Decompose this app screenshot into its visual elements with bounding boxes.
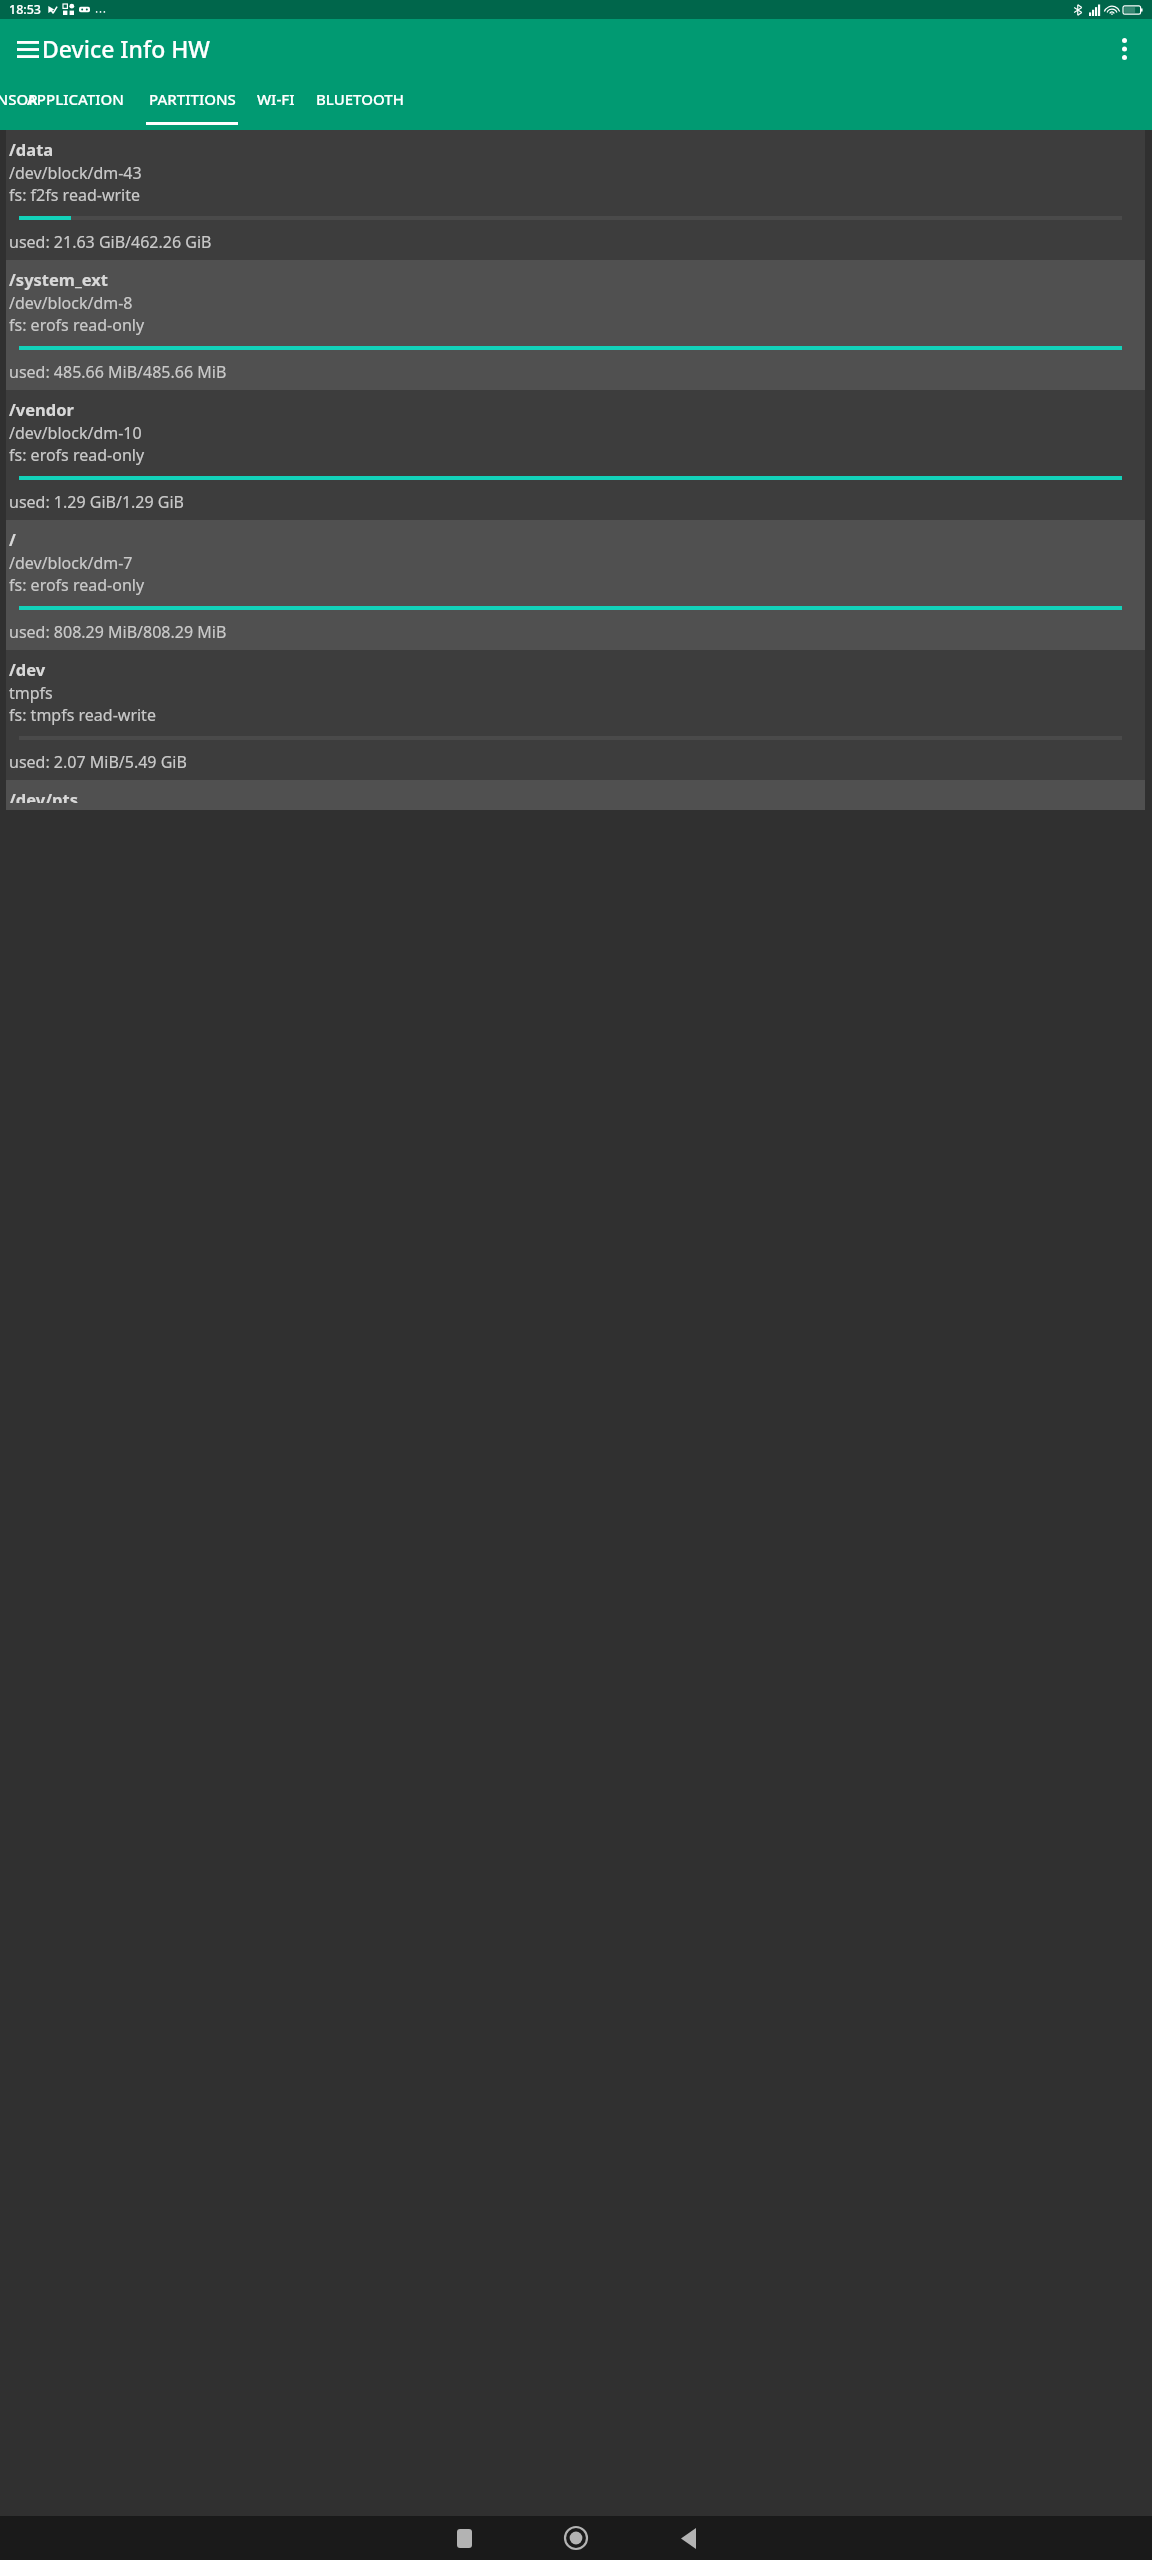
button[interactable]: Recent apps: [425, 2516, 503, 2560]
staticText: 18:53: [9, 1, 42, 18]
staticText: /data: [9, 138, 54, 160]
button[interactable]: Back: [649, 2516, 727, 2560]
staticText: used: 808.29 MiB/808.29 MiB: [9, 621, 227, 643]
staticText: /dev/block/dm-43: [9, 162, 142, 184]
button[interactable]: SENSORS: [0, 74, 42, 123]
staticText: WI-FI: [257, 89, 295, 109]
staticText: SENSORS: [0, 89, 42, 109]
button[interactable]: /vendor: [6, 390, 1145, 520]
staticText: /dev/block/dm-8: [9, 292, 133, 314]
button[interactable]: More options: [1104, 29, 1144, 69]
staticText: /dev/block/dm-7: [9, 552, 133, 574]
button[interactable]: Home: [537, 2516, 615, 2560]
staticText: used: 485.66 MiB/485.66 MiB: [9, 361, 227, 383]
staticText: Device Info HW: [42, 33, 211, 64]
staticText: used: 21.63 GiB/462.26 GiB: [9, 231, 212, 253]
button[interactable]: /: [6, 520, 1145, 650]
staticText: fs: f2fs read-write: [9, 184, 140, 206]
staticText: used: 2.07 MiB/5.49 GiB: [9, 751, 187, 773]
staticText: fs: tmpfs read-write: [9, 704, 156, 726]
button[interactable]: PARTITIONS: [146, 74, 238, 123]
staticText: /: [9, 528, 16, 550]
staticText: APPLICATIONS: [27, 89, 131, 109]
staticText: /dev: [9, 658, 46, 680]
button[interactable]: BLUETOOTH: [312, 74, 408, 123]
button[interactable]: APPLICATIONS: [27, 74, 131, 123]
staticText: fs: erofs read-only: [9, 444, 145, 466]
staticText: fs: erofs read-only: [9, 574, 145, 596]
staticText: /system_ext: [9, 268, 108, 290]
staticText: BLUETOOTH: [316, 89, 404, 109]
staticText: fs: erofs read-only: [9, 314, 145, 336]
button[interactable]: /dev/pts: [6, 780, 1145, 810]
staticText: /vendor: [9, 398, 74, 420]
staticText: used: 1.29 GiB/1.29 GiB: [9, 491, 184, 513]
button[interactable]: /data: [6, 130, 1145, 260]
button[interactable]: WI-FI: [248, 74, 304, 123]
button[interactable]: /dev: [6, 650, 1145, 780]
button[interactable]: /system_ext: [6, 260, 1145, 390]
staticText: tmpfs: [9, 682, 53, 704]
staticText: /dev/block/dm-10: [9, 422, 142, 444]
staticText: PARTITIONS: [149, 89, 236, 109]
button[interactable]: Open navigation drawer: [7, 28, 49, 70]
staticText: /dev/pts: [9, 788, 78, 803]
